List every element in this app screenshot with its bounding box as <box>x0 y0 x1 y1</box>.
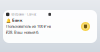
staticText: Пользователь из 100 ₽ на <box>6 23 51 29</box>
staticText: ₽28. Ваш новый б. <box>6 29 39 35</box>
staticText: Телеграмм · Сейчас <box>11 13 36 16</box>
staticText: 🔔 Банк <box>6 18 22 23</box>
button[interactable]: Телеграмм · Сейчас <box>3 10 97 43</box>
